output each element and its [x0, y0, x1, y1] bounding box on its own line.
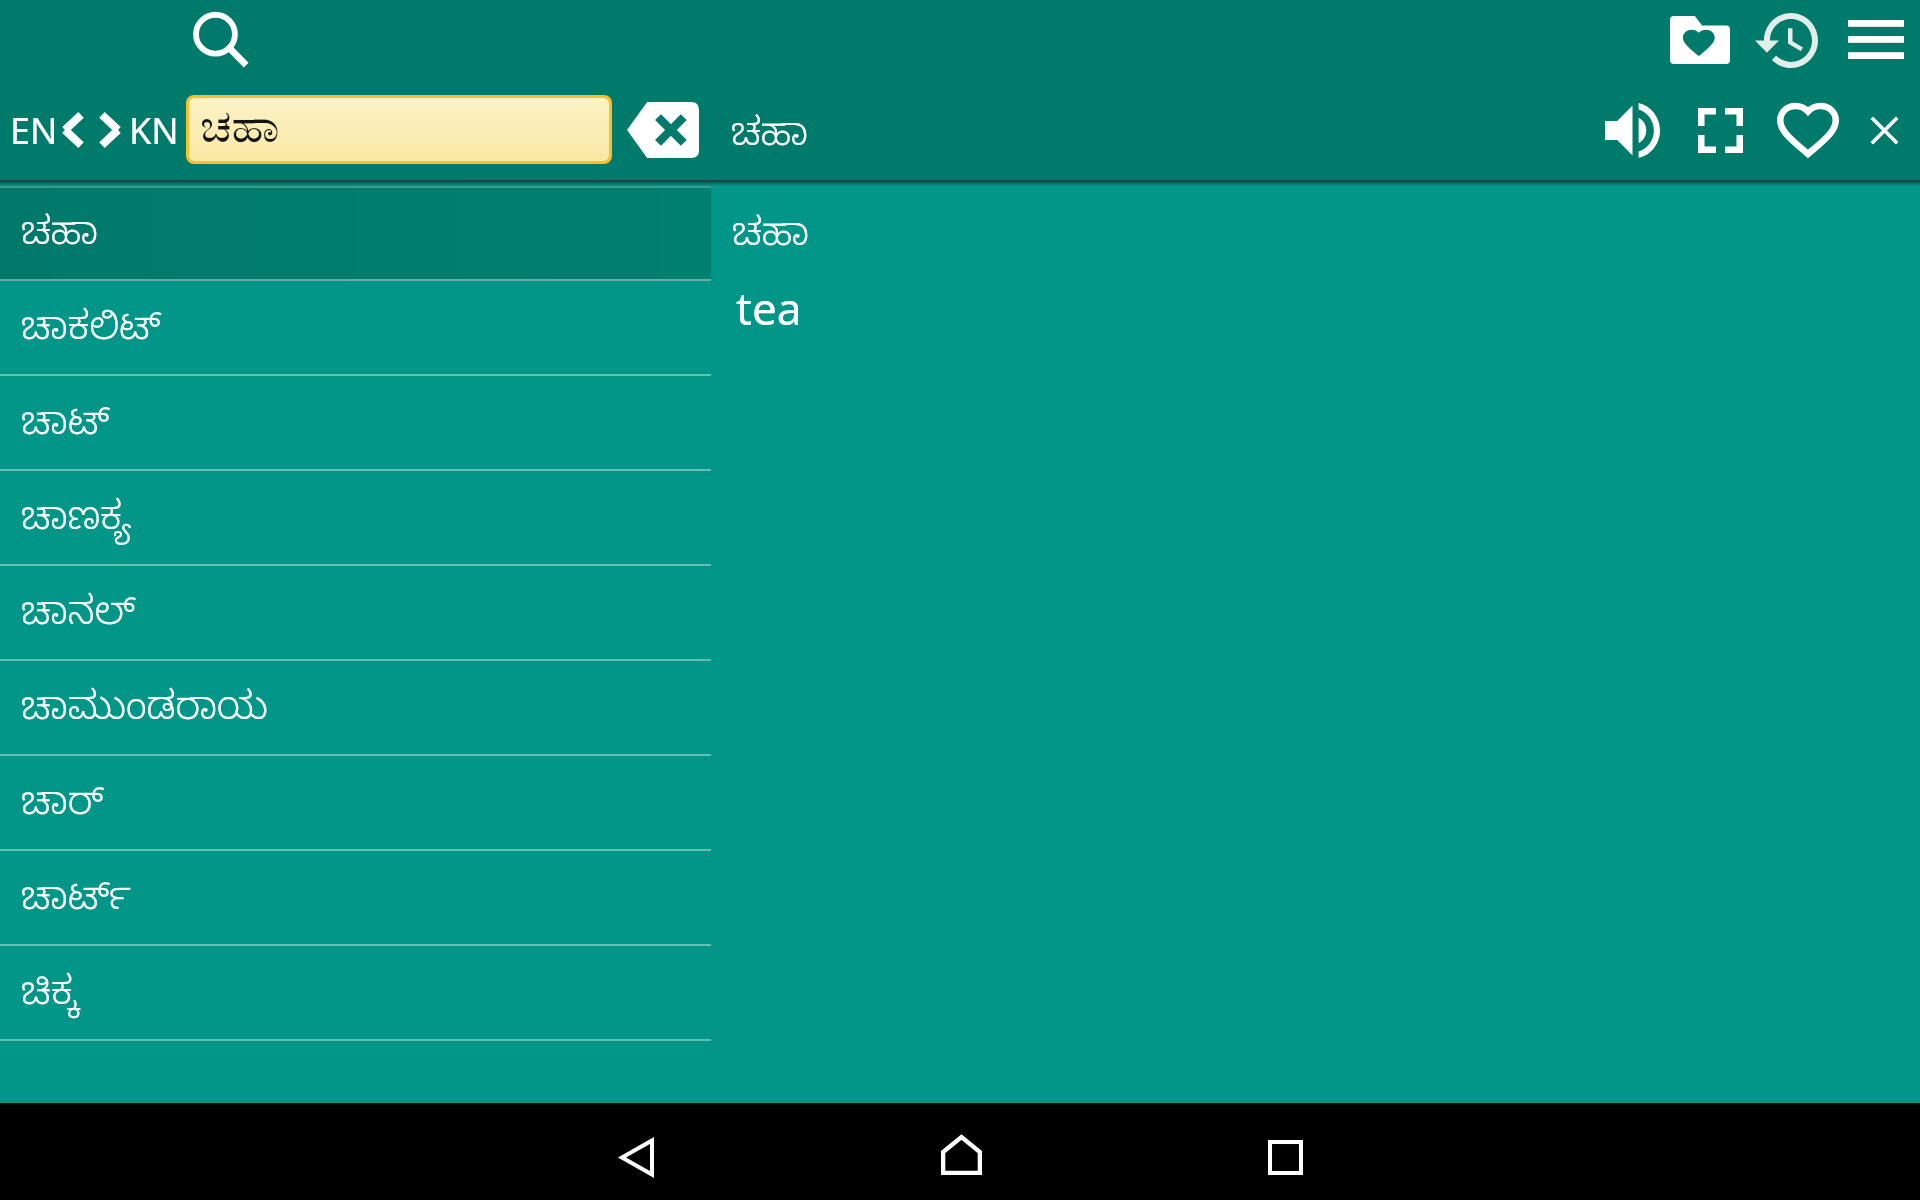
button[interactable]: ಚಾರ್ — [0, 756, 711, 851]
staticText: ಚಾರ್ಟ್ — [21, 877, 132, 930]
button[interactable]: Add to favourites — [1768, 92, 1848, 168]
staticText: ಚಹಾ — [731, 113, 809, 166]
button[interactable]: Home — [911, 1106, 1011, 1200]
button[interactable]: ಚಹಾ — [0, 186, 711, 281]
staticText: ಚಾಣಕ್ಯ — [21, 497, 132, 550]
button[interactable]: ಚಹಾ — [711, 194, 1920, 262]
button[interactable]: ಚಿಕ್ಕ — [0, 946, 711, 1041]
staticText: ಚಿಕ್ಕ — [21, 972, 79, 1025]
staticText: ಚಾಮುಂಡರಾಯ — [21, 687, 268, 740]
button[interactable]: Fullscreen — [1682, 92, 1758, 168]
button[interactable]: ಚಾರ್ಟ್ — [0, 851, 711, 946]
button[interactable]: ಚಾಟ್ — [0, 376, 711, 471]
button[interactable]: Close — [1849, 92, 1919, 168]
button[interactable]: Search — [187, 2, 259, 82]
button[interactable]: Menu — [1838, 2, 1914, 76]
staticText: tea — [736, 278, 802, 338]
button[interactable]: ಚಹಾ — [718, 96, 828, 164]
button[interactable]: EN — [0, 92, 180, 168]
button[interactable]: Pronounce — [1588, 92, 1676, 168]
button[interactable]: History — [1745, 3, 1827, 77]
staticText: ಚಾಟ್ — [21, 402, 110, 455]
button[interactable]: Favourites — [1659, 3, 1741, 77]
staticText: KN — [129, 106, 179, 155]
staticText: ಚಹಾ — [21, 212, 99, 265]
button[interactable]: ಚಾಣಕ್ಯ — [0, 471, 711, 566]
button[interactable]: Back — [586, 1109, 686, 1200]
staticText: ಚಾರ್ — [21, 782, 104, 835]
staticText: ಚಹಾ — [200, 105, 280, 151]
button[interactable]: ಚಾನಲ್ — [0, 566, 711, 661]
staticText: ಚಹಾ — [732, 213, 810, 266]
button[interactable]: Recents — [1235, 1109, 1335, 1200]
button[interactable]: Backspace — [627, 102, 699, 158]
button[interactable]: ಚಹಾ — [189, 98, 609, 161]
staticText: ಚಾಕಲಿಟ್ — [21, 307, 161, 360]
button[interactable]: ಚಾಕಲಿಟ್ — [0, 281, 711, 376]
staticText: EN — [10, 106, 58, 155]
button[interactable]: ಚಾಮುಂಡರಾಯ — [0, 661, 711, 756]
staticText: ಚಾನಲ್ — [21, 592, 135, 645]
button[interactable]: tea — [711, 268, 1920, 334]
